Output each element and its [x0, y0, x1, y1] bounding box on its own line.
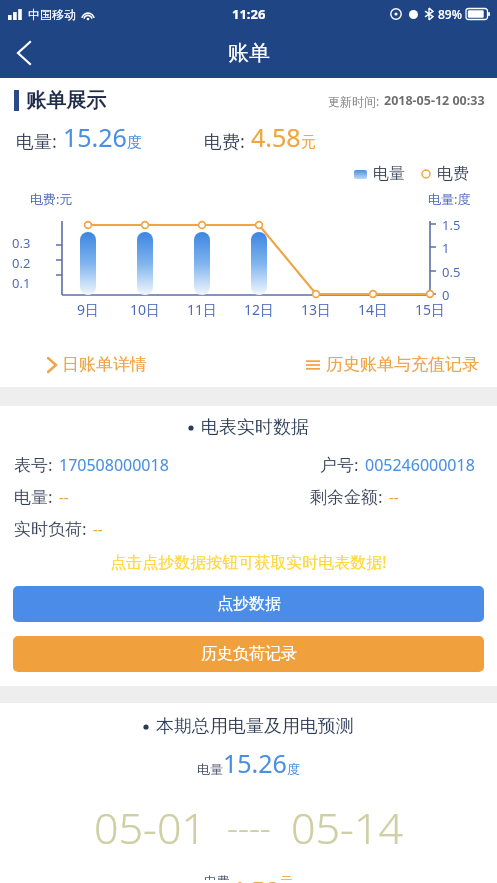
staticText: 账单 — [228, 40, 270, 66]
staticText: 15.26 — [63, 120, 127, 154]
staticText: -- — [389, 487, 399, 507]
button[interactable]: 历史负荷记录 — [13, 636, 484, 672]
staticText: 4.58 — [251, 120, 301, 154]
staticText: 电量 — [373, 164, 405, 184]
button[interactable]: Back — [0, 29, 48, 77]
staticText: 电量: — [14, 485, 53, 508]
staticText: 14日 — [353, 300, 393, 319]
staticText: -- — [59, 487, 69, 507]
staticText: 11日 — [182, 300, 222, 319]
staticText: 15日 — [410, 300, 450, 319]
staticText: 历史负荷记录 — [201, 644, 297, 664]
staticText: 元 — [280, 873, 293, 880]
staticText: 15.26 — [223, 746, 287, 780]
staticText: 户号: — [320, 453, 359, 476]
staticText: 剩余金额: — [310, 485, 383, 508]
staticText: 89% — [438, 6, 462, 22]
staticText: 点击点抄数据按钮可获取实时电表数据! — [0, 551, 497, 573]
staticText: 实时负荷: — [14, 517, 87, 540]
staticText: 中国移动 — [28, 7, 76, 22]
staticText: 度 — [127, 133, 142, 152]
staticText: 11:26 — [232, 5, 266, 23]
staticText: 电量:度 — [428, 190, 471, 208]
staticText: 0.2 — [12, 254, 31, 272]
staticText: 12日 — [239, 300, 279, 319]
staticText: 账单展示 — [26, 88, 106, 113]
staticText: 表号: — [14, 453, 53, 476]
button[interactable]: 日账单详情 — [44, 348, 151, 381]
staticText: 度 — [287, 761, 300, 777]
staticText: 电量 — [197, 761, 223, 777]
staticText: 点抄数据 — [217, 594, 281, 614]
staticText: 本期总用电量及用电预测 — [156, 715, 354, 738]
staticText: 电费 — [437, 164, 469, 184]
staticText: 日账单详情 — [62, 354, 147, 375]
staticText: 0 — [442, 286, 450, 304]
staticText: 电费 — [204, 873, 230, 880]
staticText: 2018-05-12 00:33 — [384, 92, 485, 109]
staticText: 元 — [301, 133, 316, 152]
staticText: 历史账单与充值记录 — [326, 354, 479, 375]
staticText: 13日 — [296, 300, 336, 319]
staticText: 1.5 — [442, 216, 461, 234]
staticText: 10日 — [125, 300, 165, 319]
button[interactable]: 历史账单与充值记录 — [302, 348, 483, 381]
staticText: 9日 — [68, 300, 108, 319]
staticText: 更新时间: — [328, 93, 380, 109]
staticText: 05-14 — [291, 798, 404, 857]
staticText: 0.5 — [442, 263, 461, 281]
staticText: 电费:元 — [30, 190, 73, 208]
button[interactable]: 点抄数据 — [13, 586, 484, 622]
staticText: 1 — [442, 239, 450, 257]
staticText: 4.58 — [230, 873, 280, 883]
staticText: 电费: — [204, 129, 245, 154]
staticText: 电量: — [16, 129, 57, 154]
staticText: ---- — [227, 805, 271, 851]
staticText: 005246000018 — [365, 454, 475, 476]
staticText: 05-01 — [94, 798, 207, 857]
staticText: 0.3 — [12, 234, 31, 252]
staticText: -- — [93, 519, 103, 539]
staticText: 170508000018 — [59, 454, 169, 476]
staticText: 0.1 — [12, 274, 31, 292]
staticText: 电表实时数据 — [201, 416, 309, 439]
